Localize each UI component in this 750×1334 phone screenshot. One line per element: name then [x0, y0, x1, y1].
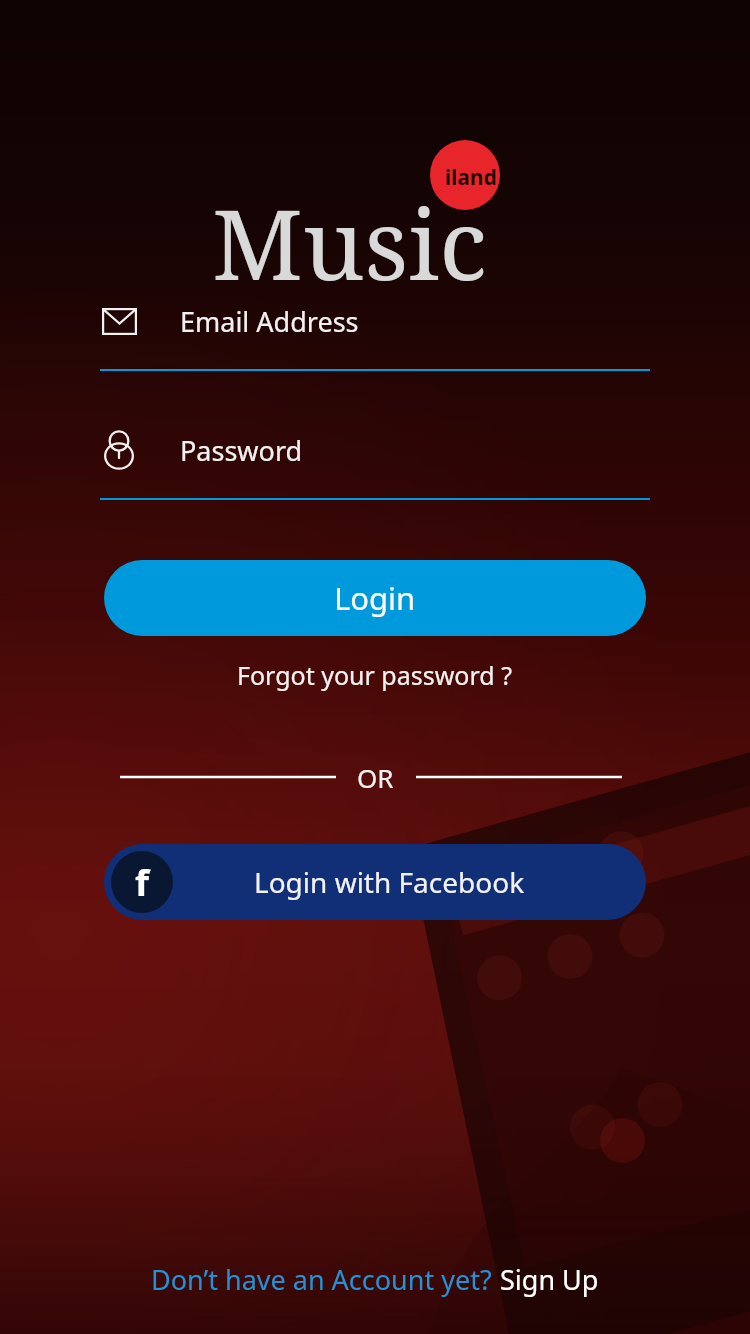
staticText: Password — [180, 432, 303, 469]
button[interactable]: Password — [100, 429, 650, 500]
staticText: Don’t have an Account yet? — [151, 1261, 492, 1298]
staticText: OR — [357, 760, 394, 794]
button[interactable]: Forgot your password ? — [225, 654, 525, 696]
staticText: Login with Facebook — [254, 863, 525, 901]
button[interactable]: Don’t have an Account yet? — [0, 1261, 750, 1334]
staticText: Sign Up — [500, 1261, 599, 1298]
other: Password — [100, 429, 138, 471]
other: Email — [100, 300, 138, 342]
staticText: iland — [445, 163, 498, 192]
staticText: Forgot your password ? — [237, 658, 513, 692]
button[interactable]: Email — [100, 300, 650, 371]
button[interactable]: Login — [104, 560, 646, 636]
staticText: f — [135, 858, 149, 907]
staticText: Login — [334, 577, 416, 619]
button[interactable]: f — [104, 844, 646, 920]
staticText: Music — [212, 176, 488, 308]
staticText: Email Address — [180, 303, 359, 340]
